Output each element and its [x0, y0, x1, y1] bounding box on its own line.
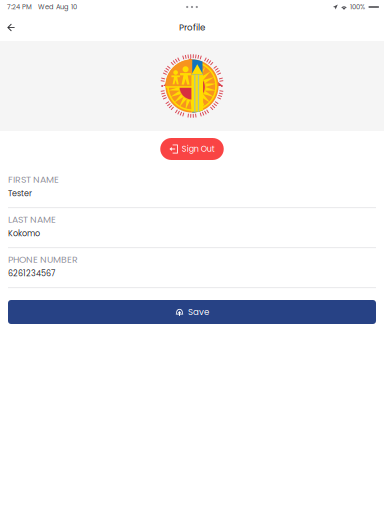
staticText: Kokomo — [8, 228, 40, 239]
button[interactable]: Sign Out — [160, 138, 224, 160]
staticText: Sign Out — [182, 143, 215, 155]
staticText: FIRST NAME — [8, 173, 59, 186]
button[interactable]: Back — [0, 16, 22, 38]
staticText: PHONE NUMBER — [8, 253, 78, 266]
staticText: LAST NAME — [8, 213, 56, 226]
staticText: Profile — [179, 21, 205, 33]
staticText: Tester — [8, 188, 32, 199]
button[interactable]: Save — [8, 300, 376, 324]
staticText: 7:24 PM — [7, 2, 32, 12]
staticText: Wed Aug 10 — [38, 2, 77, 12]
staticText: 6261234567 — [8, 268, 55, 279]
staticText: Save — [188, 306, 209, 318]
staticText: 100% — [350, 2, 365, 12]
